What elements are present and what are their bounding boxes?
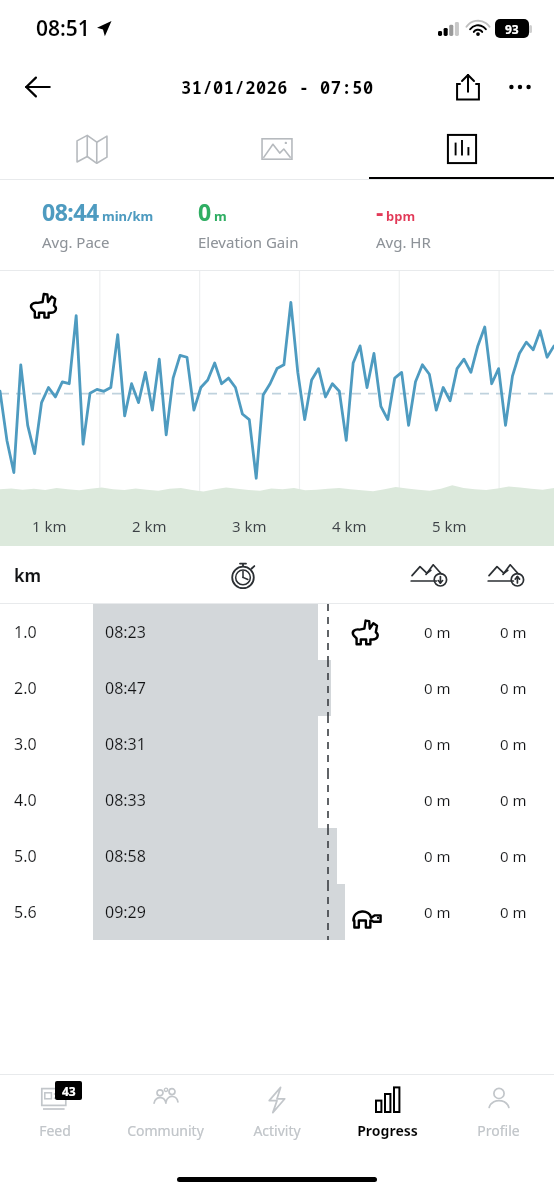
staticText: Feed — [39, 1121, 71, 1140]
staticText: 1.0 — [14, 621, 37, 643]
staticText: 2.0 — [14, 677, 37, 699]
button[interactable]: Community — [110, 1075, 221, 1159]
staticText: 0 — [198, 196, 211, 227]
staticText: Profile — [477, 1121, 520, 1140]
staticText: 4 km — [332, 516, 367, 536]
staticText: 2 km — [132, 516, 167, 536]
button[interactable]: 4.0 — [0, 772, 554, 828]
button[interactable]: Progress — [332, 1075, 443, 1159]
staticText: 43 — [62, 1083, 76, 1099]
staticText: 0 m — [424, 678, 451, 698]
staticText: 0 m — [500, 790, 527, 810]
staticText: 93 — [505, 21, 519, 37]
staticText: 0 m — [424, 790, 451, 810]
staticText: 1 km — [32, 516, 67, 536]
button[interactable]: 2.0 — [0, 660, 554, 716]
staticText: 08:33 — [105, 789, 146, 811]
staticText: 5.0 — [14, 845, 37, 867]
staticText: 0 m — [500, 846, 527, 866]
staticText: Activity — [253, 1121, 301, 1140]
staticText: 0 m — [424, 734, 451, 754]
button[interactable]: Back — [14, 63, 62, 111]
staticText: Avg. HR — [376, 232, 431, 252]
button[interactable]: 5.6 — [0, 884, 554, 940]
button[interactable]: 3.0 — [0, 716, 554, 772]
staticText: 0 m — [500, 622, 527, 642]
staticText: 0 m — [424, 902, 451, 922]
staticText: 4.0 — [14, 789, 37, 811]
staticText: 08:51 — [36, 14, 90, 43]
button[interactable]: Profile — [443, 1075, 554, 1159]
staticText: 08:44 — [42, 196, 99, 227]
staticText: 08:58 — [105, 845, 146, 867]
staticText: Progress — [357, 1121, 418, 1140]
staticText: m — [214, 207, 227, 225]
button[interactable]: 43 — [0, 1075, 110, 1159]
staticText: 09:29 — [105, 901, 146, 923]
staticText: 0 m — [424, 846, 451, 866]
staticText: 0 m — [500, 902, 527, 922]
staticText: 5 km — [432, 516, 467, 536]
staticText: 3 km — [232, 516, 267, 536]
button[interactable]: Map — [0, 118, 184, 180]
staticText: 08:47 — [105, 677, 146, 699]
button[interactable]: Photos — [184, 118, 369, 180]
button[interactable]: 5.0 — [0, 828, 554, 884]
button[interactable]: Statistics — [369, 118, 554, 180]
staticText: 3.0 — [14, 733, 37, 755]
staticText: 31/01/2026 - 07:50 — [181, 76, 374, 99]
staticText: Avg. Pace — [42, 232, 110, 252]
staticText: 0 m — [500, 678, 527, 698]
staticText: 0 m — [500, 734, 527, 754]
staticText: 08:23 — [105, 621, 146, 643]
staticText: - — [376, 196, 383, 227]
staticText: 5.6 — [14, 901, 37, 923]
button[interactable]: More options — [494, 61, 546, 113]
staticText: Elevation Gain — [198, 232, 299, 252]
staticText: bpm — [386, 207, 416, 225]
staticText: Community — [127, 1121, 204, 1140]
button[interactable]: 1.0 — [0, 604, 554, 660]
staticText: min/km — [102, 207, 154, 225]
staticText: 0 m — [424, 622, 451, 642]
button[interactable]: Activity — [221, 1075, 332, 1159]
button[interactable]: Share — [442, 61, 494, 113]
staticText: 08:31 — [105, 733, 146, 755]
staticText: km — [14, 564, 42, 587]
